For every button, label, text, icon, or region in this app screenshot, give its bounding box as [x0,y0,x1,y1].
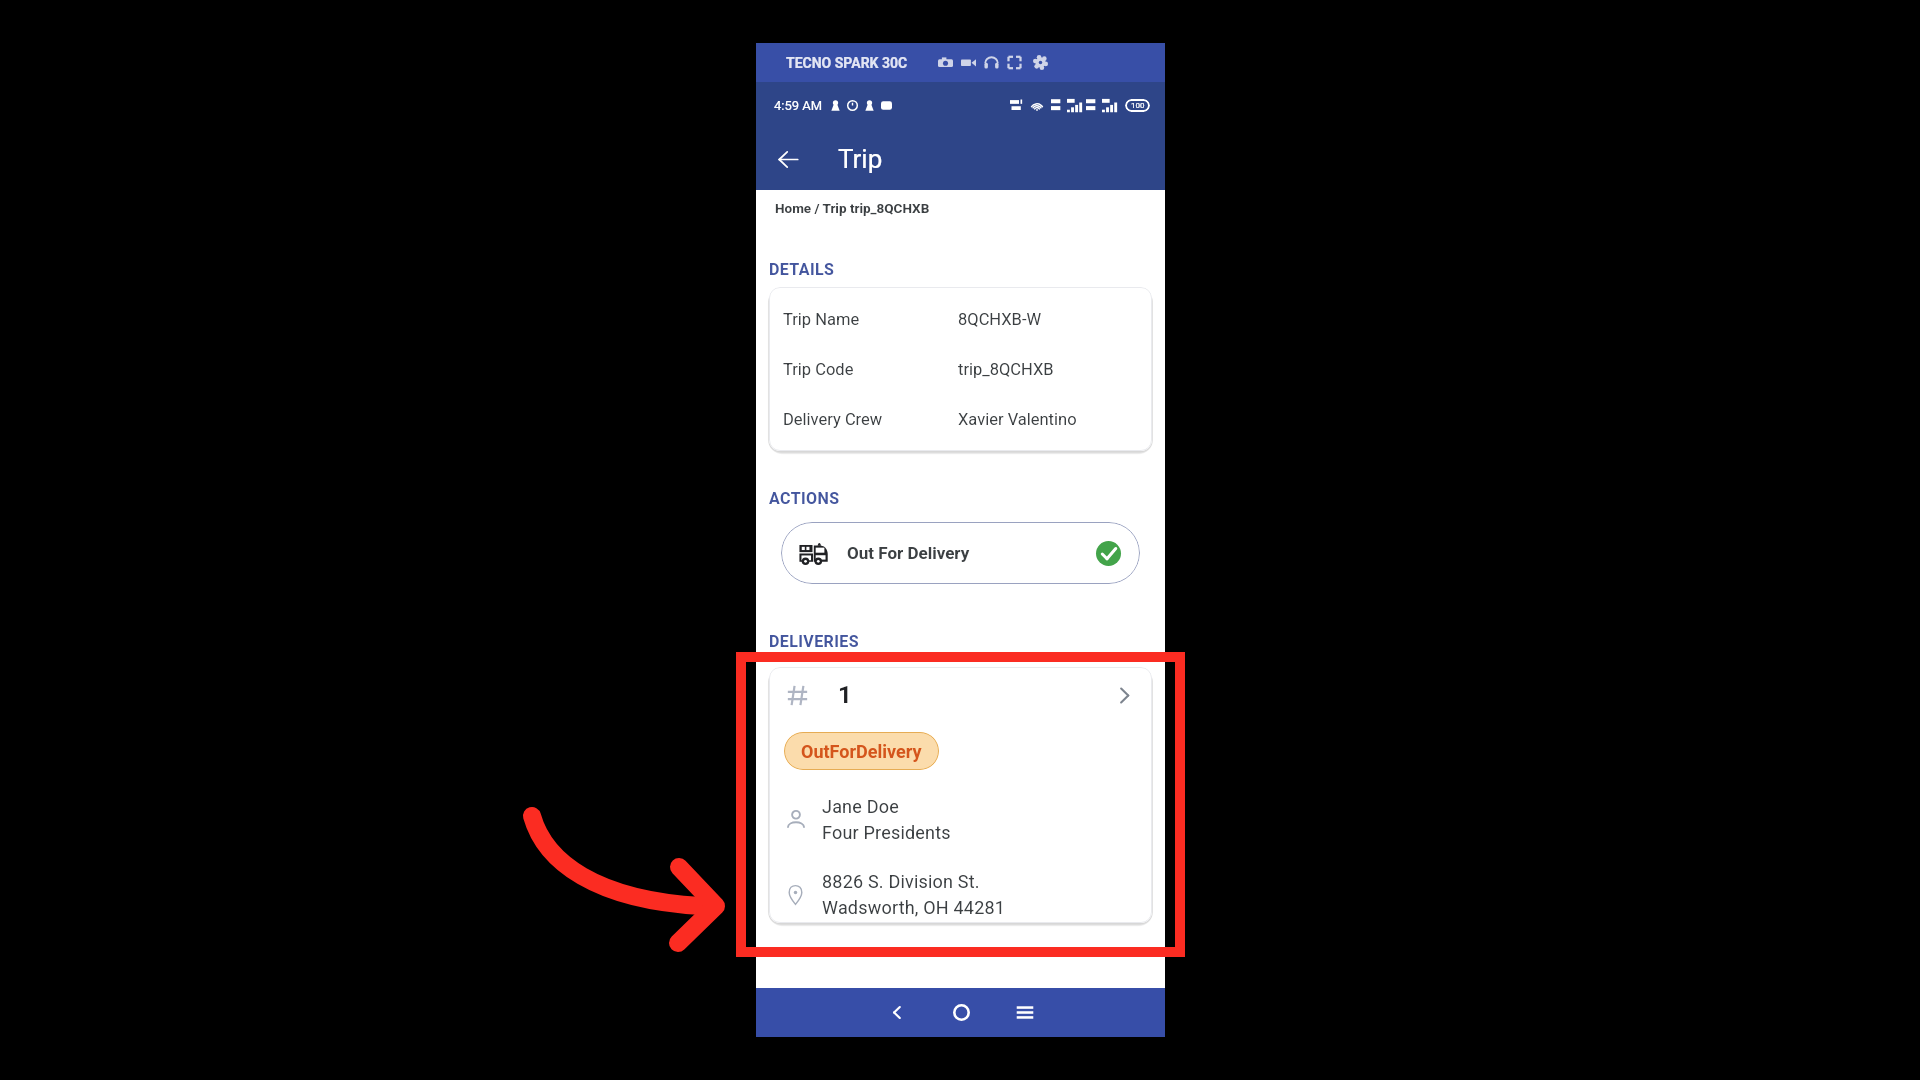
button[interactable]: Open delivery details [1109,679,1135,711]
staticText: TECNO SPARK 30C [786,55,908,71]
staticText: ACTIONS [769,489,840,508]
staticText: Delivery Crew [783,410,883,429]
staticText: Trip Name [783,310,860,329]
staticText: Home / Trip trip_8QCHXB [775,200,930,216]
staticText: DETAILS [769,260,835,279]
staticText: 8QCHXB-W [958,310,1042,329]
button[interactable]: 1 [769,667,1152,923]
staticText: OutForDelivery [801,741,922,762]
staticText: 8826 S. Division St. [822,871,980,892]
staticText: Jane Doe [822,796,899,817]
staticText: Out For Delivery [847,543,970,563]
staticText: Wadsworth, OH 44281 [822,897,1006,918]
staticText: 1 [838,681,852,709]
button[interactable]: Out For Delivery [781,522,1140,584]
button[interactable]: Back [864,988,929,1037]
staticText: Xavier Valentino [958,410,1077,429]
staticText: Trip Code [783,360,854,379]
staticText: 100 [1131,101,1145,110]
staticText: Four Presidents [822,822,951,843]
button[interactable]: Back [764,135,812,183]
staticText: Trip [838,144,883,174]
button[interactable]: Home [929,988,993,1037]
staticText: 4:59 AM [774,98,823,113]
staticText: trip_8QCHXB [958,360,1054,379]
button[interactable]: Recent apps [993,988,1057,1037]
staticText: DELIVERIES [769,632,859,651]
